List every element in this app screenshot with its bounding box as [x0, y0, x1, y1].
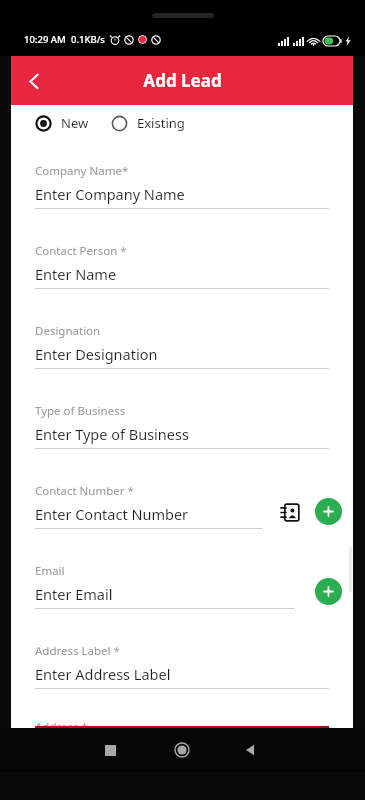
- staticText: 10:29 AM: [24, 33, 66, 46]
- staticText: Enter Company Name: [35, 184, 185, 204]
- button[interactable]: Recent apps: [100, 740, 120, 760]
- button[interactable]: Back: [11, 58, 57, 104]
- staticText: Add Lead: [143, 69, 222, 92]
- staticText: New: [61, 114, 89, 132]
- button[interactable]: Home: [171, 739, 193, 761]
- staticText: Address Label *: [35, 643, 120, 659]
- staticText: Company Name*: [35, 163, 129, 179]
- staticText: Contact Number *: [35, 483, 134, 499]
- button[interactable]: Address Label *: [11, 631, 353, 711]
- button[interactable]: Contact Person *: [11, 231, 353, 311]
- button[interactable]: Type of Business: [11, 391, 353, 471]
- button[interactable]: Contact Number *: [11, 471, 353, 551]
- button[interactable]: Pick from contacts: [276, 498, 304, 526]
- staticText: Enter Email: [35, 584, 113, 604]
- staticText: Enter Name: [35, 264, 117, 284]
- staticText: Type of Business: [35, 403, 126, 419]
- staticText: Enter Contact Number: [35, 504, 189, 524]
- button[interactable]: Designation: [11, 311, 353, 391]
- staticText: Contact Person *: [35, 243, 127, 259]
- staticText: Designation: [35, 323, 101, 339]
- button[interactable]: New: [35, 114, 89, 132]
- button[interactable]: Add: [315, 498, 342, 525]
- button[interactable]: Existing: [111, 114, 185, 132]
- staticText: Email: [35, 563, 65, 579]
- staticText: Enter Address Label: [35, 664, 171, 684]
- button[interactable]: Add: [315, 578, 342, 605]
- button[interactable]: Company Name*: [11, 151, 353, 231]
- staticText: 0.1KB/s: [71, 33, 105, 46]
- button[interactable]: Back: [241, 740, 261, 760]
- staticText: Existing: [137, 114, 185, 132]
- button[interactable]: Email: [11, 551, 353, 631]
- button[interactable]: Address *: [11, 711, 353, 728]
- staticText: Enter Designation: [35, 344, 158, 364]
- staticText: Address *: [35, 719, 88, 735]
- staticText: Enter Type of Business: [35, 424, 189, 444]
